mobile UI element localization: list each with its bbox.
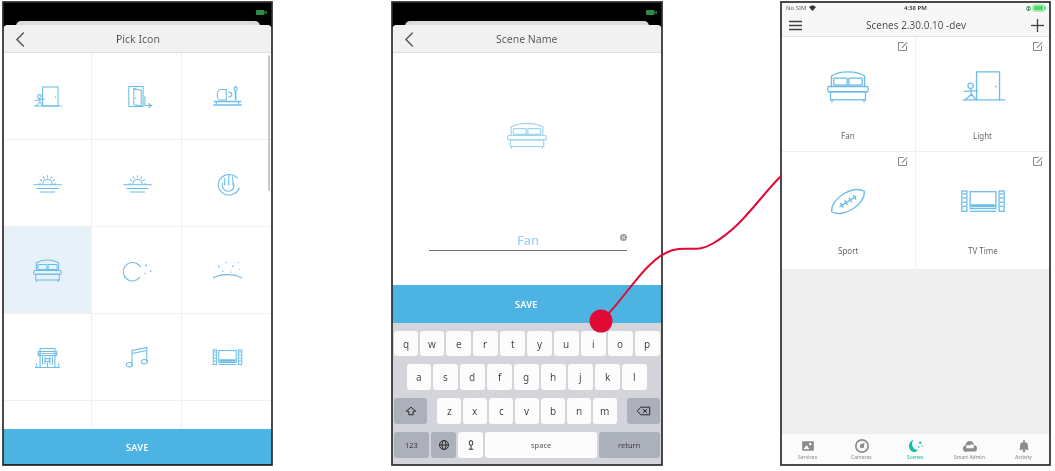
button[interactable]: Sunset	[92, 140, 182, 226]
button[interactable]: Leave home	[92, 53, 182, 139]
button[interactable]: Night	[92, 227, 182, 313]
button[interactable]: Edit TV Time	[1031, 155, 1044, 168]
button[interactable]: d	[460, 364, 485, 390]
button[interactable]: Voice input	[458, 432, 483, 458]
staticText: m	[600, 404, 610, 418]
button[interactable]: 123	[394, 432, 429, 458]
button[interactable]: Scenes	[888, 434, 942, 465]
button[interactable]: y	[527, 331, 552, 356]
staticText: r	[483, 337, 488, 351]
button[interactable]: Activity	[996, 434, 1050, 465]
button[interactable]: b	[541, 398, 565, 424]
button[interactable]: e	[446, 331, 471, 356]
staticText: b	[550, 404, 557, 418]
staticText: space	[531, 440, 552, 450]
button[interactable]: Edit Light	[1031, 40, 1044, 53]
button[interactable]: Edit Light	[916, 37, 1050, 151]
button[interactable]: Dinner	[182, 53, 272, 139]
button[interactable]: Arrive home	[3, 53, 92, 139]
button[interactable]: z	[437, 398, 461, 424]
button[interactable]: SAVE	[3, 429, 272, 464]
button[interactable]: o	[608, 331, 633, 356]
staticText: Fan	[429, 231, 627, 249]
staticText: Cameras	[851, 454, 872, 461]
button[interactable]: Backspace	[627, 398, 660, 424]
button[interactable]: SAVE	[392, 285, 662, 323]
staticText: Services	[798, 454, 818, 461]
staticText: q	[403, 337, 410, 351]
staticText: c	[499, 404, 504, 418]
button[interactable]: space	[485, 432, 597, 458]
button[interactable]: Smart Admin	[942, 434, 996, 465]
staticText: No SIM	[786, 4, 807, 12]
button[interactable]: Edit Sport	[896, 155, 909, 168]
staticText: t	[511, 337, 515, 351]
button[interactable]: s	[433, 364, 458, 390]
staticText: p	[644, 337, 651, 351]
button[interactable]: Services	[781, 434, 834, 465]
staticText: i	[592, 337, 595, 351]
button[interactable]: j	[568, 364, 593, 390]
staticText: Smart Admin	[954, 454, 985, 461]
button[interactable]: Home	[3, 314, 92, 400]
staticText: return	[618, 440, 641, 450]
staticText: Activity	[1015, 454, 1032, 461]
staticText: k	[605, 370, 611, 384]
button[interactable]: k	[595, 364, 620, 390]
button[interactable]: Shift	[394, 398, 427, 424]
staticText: Scenes 2.30.0.10 -dev	[866, 18, 966, 32]
button[interactable]: v	[515, 398, 539, 424]
button[interactable]: g	[514, 364, 539, 390]
button[interactable]: Relax	[182, 140, 272, 226]
staticText: n	[576, 404, 583, 418]
button[interactable]: Switch language	[431, 432, 456, 458]
staticText: y	[537, 337, 543, 351]
button[interactable]: Add scene	[1024, 13, 1050, 37]
button[interactable]: Edit TV Time	[916, 152, 1050, 269]
button[interactable]: x	[463, 398, 487, 424]
button[interactable]: return	[599, 432, 660, 458]
staticText: z	[447, 404, 452, 418]
staticText: e	[456, 337, 462, 351]
staticText: d	[469, 370, 476, 384]
staticText: v	[524, 404, 530, 418]
button[interactable]: Stars	[182, 227, 272, 313]
button[interactable]: Music	[92, 314, 182, 400]
button[interactable]: Edit Sport	[781, 152, 915, 269]
button[interactable]: w	[420, 331, 444, 356]
button[interactable]: Sunrise	[3, 140, 92, 226]
staticText: SAVE	[515, 298, 539, 310]
staticText: o	[617, 337, 624, 351]
staticText: 123	[405, 440, 418, 450]
staticText: u	[563, 337, 570, 351]
button[interactable]: q	[394, 331, 418, 356]
button[interactable]: a	[407, 364, 431, 390]
button[interactable]: Edit Fan	[781, 37, 915, 151]
button[interactable]: Bedtime	[3, 227, 92, 313]
button[interactable]: Edit Fan	[896, 40, 909, 53]
button[interactable]: r	[473, 331, 498, 356]
button[interactable]: m	[593, 398, 617, 424]
button[interactable]: Menu	[781, 13, 809, 37]
button[interactable]: p	[635, 331, 660, 356]
button[interactable]: u	[554, 331, 579, 356]
button[interactable]: t	[500, 331, 525, 356]
button[interactable]: c	[489, 398, 513, 424]
staticText: j	[579, 370, 582, 384]
button[interactable]: Back	[392, 25, 426, 53]
staticText: Sport	[838, 245, 859, 256]
staticText: g	[523, 370, 530, 384]
button[interactable]: f	[487, 364, 512, 390]
button[interactable]: TV	[182, 314, 272, 400]
button[interactable]: n	[567, 398, 591, 424]
button[interactable]: Back	[3, 25, 37, 53]
staticText: Scene Name	[496, 32, 558, 46]
button[interactable]: l	[622, 364, 647, 390]
staticText: TV Time	[968, 245, 998, 256]
staticText: 4:38 PM	[904, 4, 927, 12]
button[interactable]: Cameras	[834, 434, 888, 465]
button[interactable]: h	[541, 364, 566, 390]
button[interactable]: i	[581, 331, 606, 356]
staticText: f	[498, 370, 502, 384]
staticText: a	[416, 370, 422, 384]
